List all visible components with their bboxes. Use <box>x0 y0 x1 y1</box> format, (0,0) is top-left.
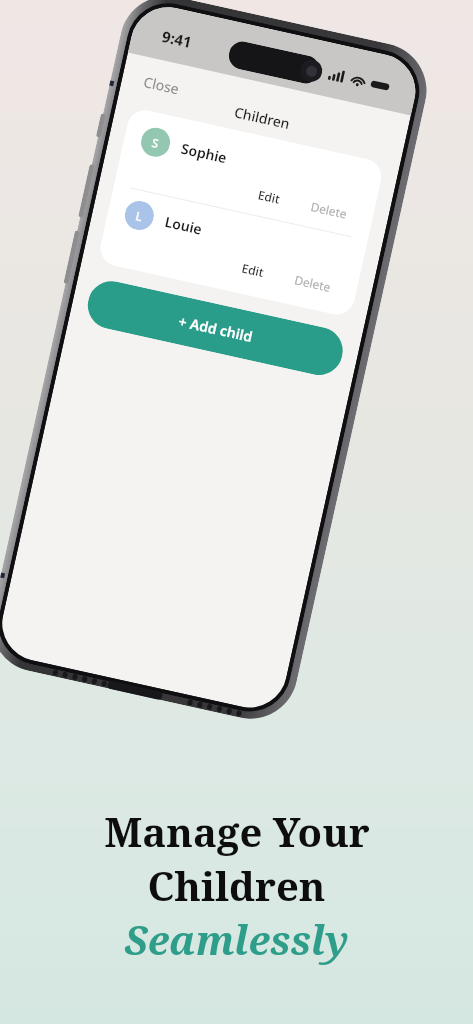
staticText: Edit <box>256 186 281 207</box>
staticText: Edit <box>240 260 265 280</box>
button[interactable]: + Add child <box>83 276 347 380</box>
other: Volume down <box>63 230 80 284</box>
staticText: Delete <box>309 198 349 222</box>
button[interactable]: Edit <box>231 255 275 285</box>
staticText: Seamlessly <box>124 912 349 966</box>
staticText: Children <box>232 102 292 133</box>
button[interactable]: Delete <box>284 266 342 300</box>
staticText: S <box>150 134 161 151</box>
staticText: L <box>134 207 144 224</box>
staticText: Louie <box>163 212 204 239</box>
staticText: Delete <box>293 271 333 295</box>
button[interactable]: L <box>98 185 368 313</box>
other: Mute switch <box>96 113 106 138</box>
staticText: Children <box>147 858 326 912</box>
button[interactable]: S <box>114 111 384 240</box>
other: Volume up <box>78 164 95 218</box>
staticText: Close <box>142 72 181 98</box>
button[interactable]: Edit <box>247 181 291 212</box>
button[interactable]: Close <box>119 61 194 107</box>
button[interactable]: Delete <box>300 193 358 227</box>
staticText: Manage Your <box>104 804 370 858</box>
staticText: + Add child <box>177 311 254 346</box>
staticText: Sophie <box>179 139 229 167</box>
staticText: 9:41 <box>160 26 194 52</box>
